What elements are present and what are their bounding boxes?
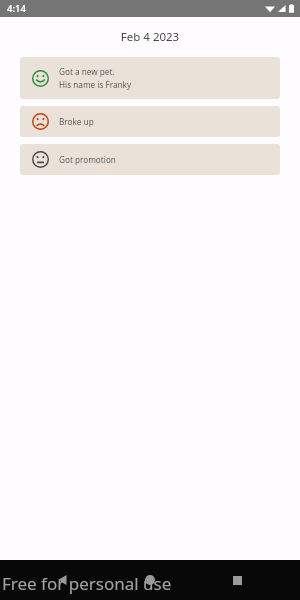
staticText: His name is Franky — [59, 79, 132, 90]
button[interactable]: Happy mood — [20, 57, 280, 99]
other: Neutral mood — [32, 151, 49, 168]
button[interactable]: Recent apps — [226, 569, 248, 591]
other: Happy mood — [32, 70, 49, 87]
button[interactable]: Sad mood — [20, 106, 280, 137]
staticText: Got a new pet. — [59, 66, 115, 77]
staticText: Got promotion — [59, 154, 116, 165]
staticText: 4:14 — [7, 2, 26, 15]
button[interactable]: Back — [52, 569, 74, 591]
staticText: Free for personal use — [2, 572, 172, 595]
button[interactable]: Home — [139, 569, 161, 591]
other: Sad mood — [32, 113, 49, 130]
button[interactable]: Neutral mood — [20, 144, 280, 175]
staticText: Broke up — [59, 116, 94, 127]
staticText: Feb 4 2023 — [0, 29, 300, 45]
